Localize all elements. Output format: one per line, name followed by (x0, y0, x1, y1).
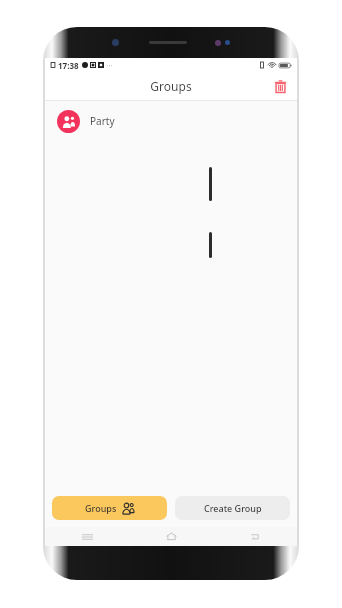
staticText: Party (90, 114, 115, 128)
button[interactable]: Create Group (175, 496, 290, 520)
button[interactable]: Delete groups (269, 75, 291, 97)
button[interactable]: Groups (52, 496, 167, 520)
staticText: 17:38 (58, 60, 79, 71)
button[interactable]: Party (45, 101, 297, 141)
staticText: Groups (150, 78, 192, 94)
staticText: Create Group (204, 502, 262, 514)
button[interactable]: Recent apps (45, 527, 129, 546)
button[interactable]: Back (213, 527, 297, 546)
staticText: Groups (85, 502, 117, 514)
button[interactable]: Home (129, 527, 213, 546)
